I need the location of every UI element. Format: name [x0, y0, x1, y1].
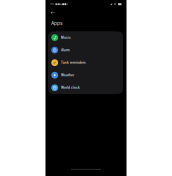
staticText: Weather	[61, 73, 74, 77]
staticText: 08:03	[50, 3, 54, 5]
button[interactable]: Alarm	[48, 44, 123, 56]
staticText: Music	[61, 36, 71, 39]
staticText: World clock	[61, 86, 80, 89]
button[interactable]: Music	[48, 31, 123, 44]
button[interactable]: Back	[45, 8, 58, 16]
staticText: Apps	[51, 20, 63, 26]
button[interactable]: Weather	[48, 69, 123, 81]
button[interactable]: Task reminders	[48, 56, 123, 69]
button[interactable]: World clock	[48, 81, 123, 94]
staticText: Task reminders	[61, 61, 86, 64]
staticText: Alarm	[61, 48, 70, 52]
